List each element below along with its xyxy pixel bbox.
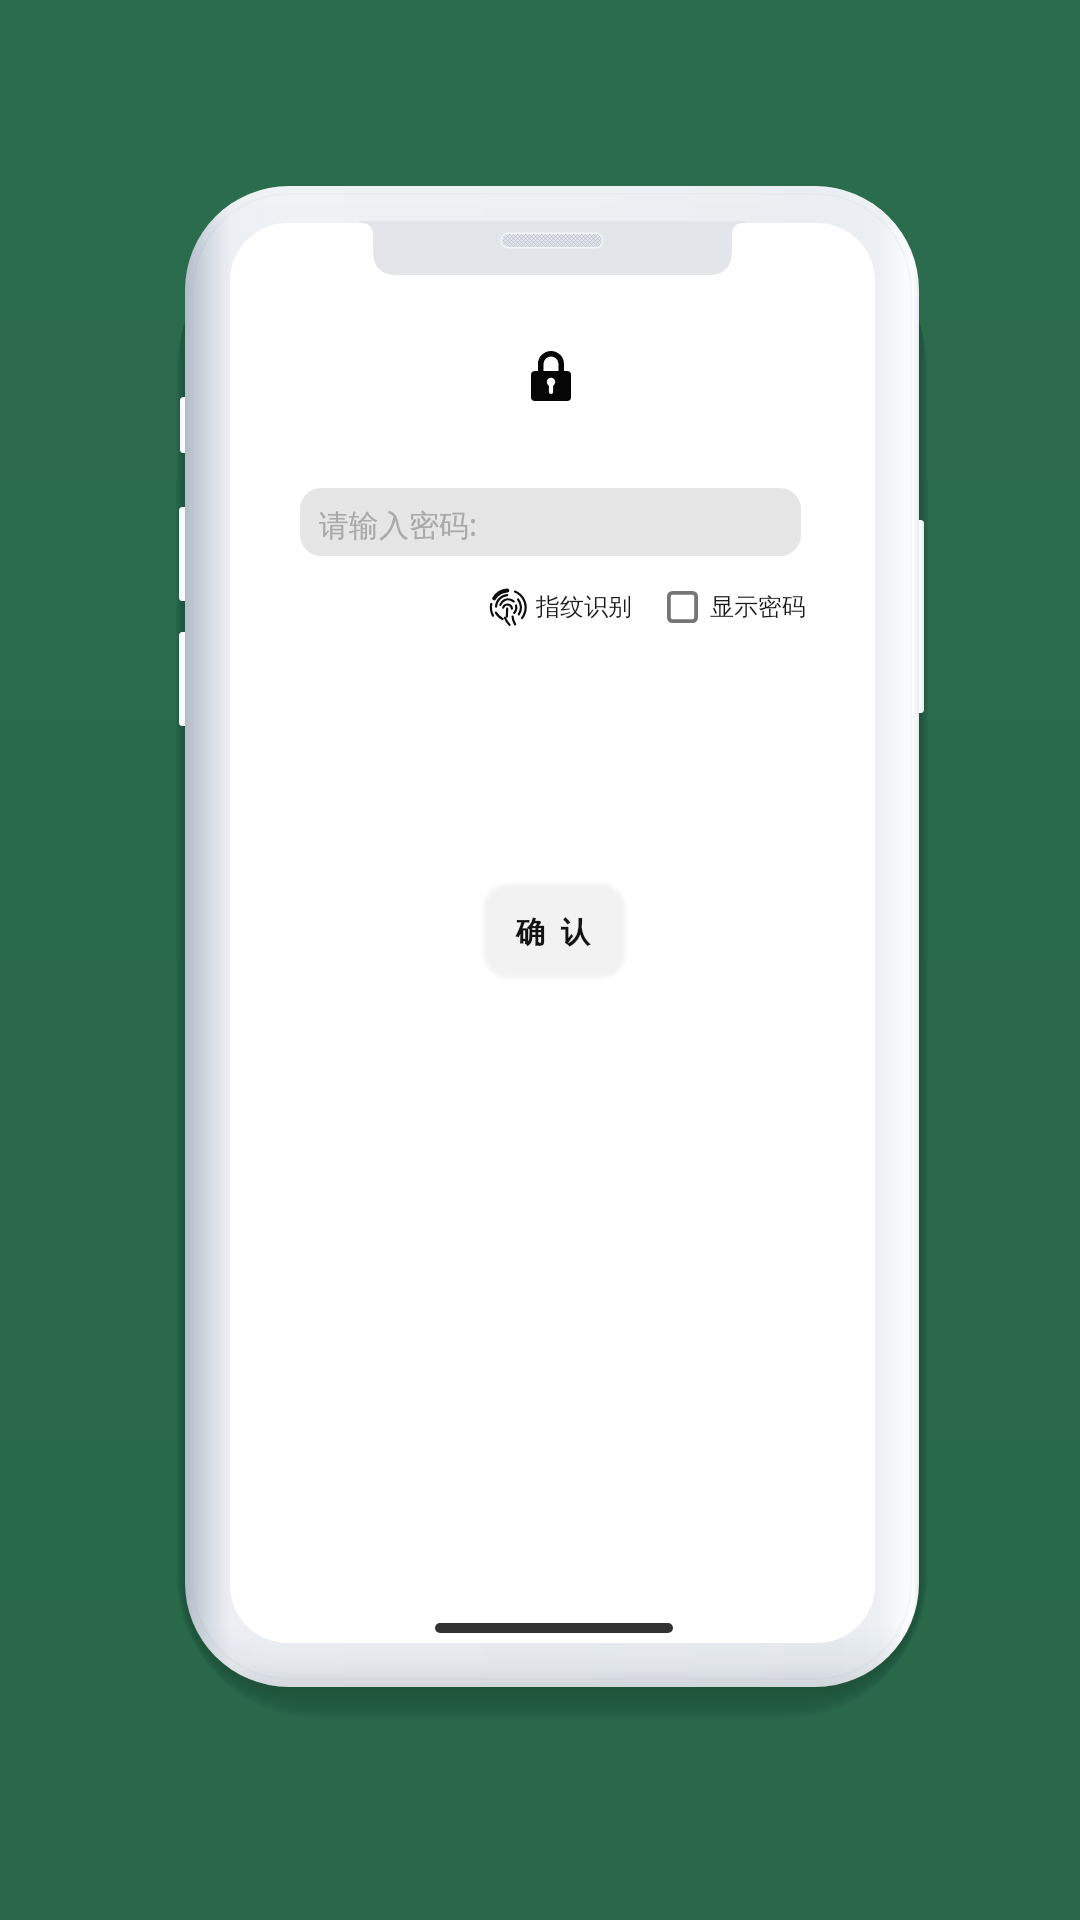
button[interactable]: 请输入密码: bbox=[300, 488, 801, 556]
button[interactable]: 显示密码 bbox=[667, 591, 806, 623]
staticText: 请输入密码: bbox=[319, 504, 478, 545]
button[interactable]: 指纹识别 bbox=[488, 588, 632, 625]
button[interactable]: 确 认 bbox=[489, 888, 620, 972]
staticText: 显示密码 bbox=[710, 592, 806, 622]
staticText: 指纹识别 bbox=[536, 592, 632, 622]
staticText: 确 认 bbox=[516, 911, 594, 951]
